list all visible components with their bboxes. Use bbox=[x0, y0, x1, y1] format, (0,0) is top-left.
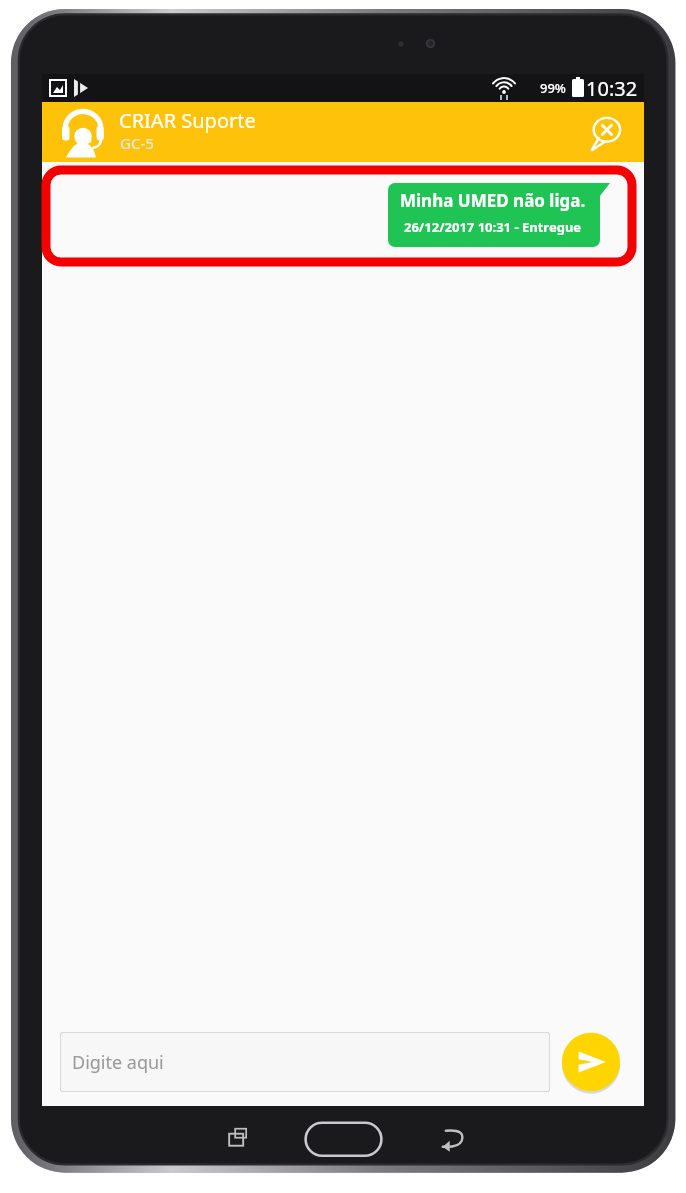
button[interactable]: Encerrar conversa bbox=[584, 110, 628, 154]
staticText: GC-5 bbox=[120, 133, 154, 153]
button[interactable]: CRIAR Suporte bbox=[42, 102, 644, 162]
button[interactable]: Digite aqui bbox=[60, 1032, 550, 1092]
button[interactable]: Minha UMED não liga. bbox=[388, 183, 610, 247]
staticText: Digite aqui bbox=[72, 1050, 164, 1075]
staticText: CRIAR Suporte bbox=[119, 107, 256, 134]
button[interactable]: Enviar bbox=[560, 1031, 622, 1093]
staticText: 99% bbox=[540, 79, 566, 97]
staticText: Minha UMED não liga. bbox=[400, 189, 586, 212]
staticText: 10:32 bbox=[586, 75, 638, 102]
staticText: 26/12/2017 10:31 - Entregue bbox=[404, 218, 582, 236]
